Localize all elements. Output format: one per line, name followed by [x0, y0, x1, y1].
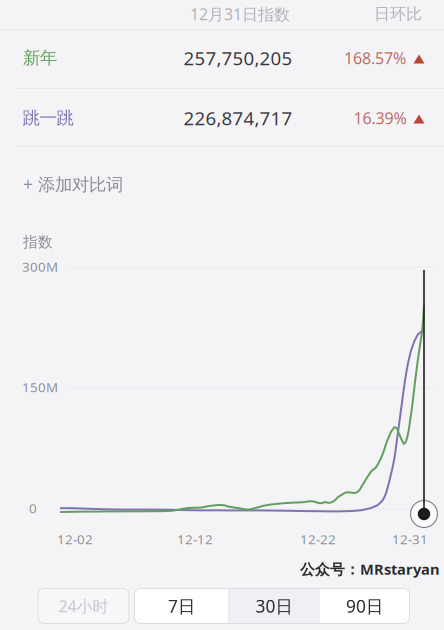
staticText: 新年: [23, 47, 57, 69]
button[interactable]: 90日: [319, 588, 409, 623]
button[interactable]: 30日: [229, 588, 318, 623]
staticText: 指数: [23, 233, 53, 251]
staticText: 7日: [168, 594, 195, 617]
button[interactable]: 7日: [134, 588, 228, 623]
staticText: 257,750,205: [183, 46, 292, 70]
staticText: 12-02: [57, 530, 93, 548]
staticText: 16.39%: [353, 107, 406, 129]
button[interactable]: 24小时: [38, 588, 129, 623]
staticText: 30日: [255, 594, 292, 617]
staticText: 90日: [346, 594, 383, 617]
staticText: 日环比: [374, 4, 422, 24]
staticText: 公众号：MRstaryan: [300, 559, 440, 579]
staticText: 24小时: [58, 595, 108, 617]
button[interactable]: 跳一跳: [22, 107, 73, 129]
staticText: 226,874,717: [183, 106, 292, 130]
staticText: 12-12: [177, 530, 213, 548]
staticText: + 添加对比词: [23, 172, 123, 195]
staticText: 300M: [22, 258, 58, 275]
staticText: 168.57%: [344, 47, 406, 69]
button[interactable]: 新年: [23, 47, 57, 69]
staticText: 跳一跳: [22, 107, 73, 129]
staticText: 12-22: [300, 530, 336, 548]
staticText: 12-31: [392, 530, 428, 548]
button[interactable]: + 添加对比词: [23, 172, 123, 195]
staticText: 0: [29, 499, 37, 517]
staticText: 150M: [22, 378, 58, 396]
staticText: 12月31日指数: [190, 3, 290, 25]
